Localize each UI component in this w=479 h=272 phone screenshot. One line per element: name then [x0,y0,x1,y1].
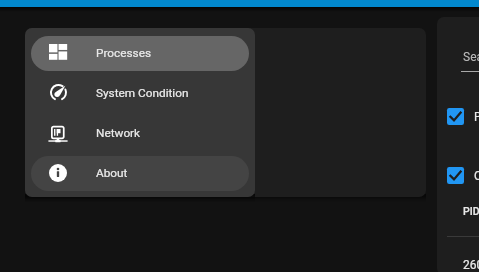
staticText: PID [463,205,479,217]
button[interactable]: Processes [31,36,249,71]
staticText: Processes [96,46,152,60]
button[interactable]: System Condition [31,76,249,111]
staticText: About [96,166,128,180]
button[interactable]: Cores [447,167,479,184]
staticText: Processes [474,110,479,124]
button[interactable]: About [31,156,249,191]
staticText: 2604 [463,258,479,272]
staticText: Cores [474,169,479,183]
staticText: Search [463,50,479,64]
staticText: System Condition [96,86,189,100]
staticText: Network [96,126,141,140]
button[interactable]: Processes [447,108,479,125]
button[interactable]: Network [31,116,249,151]
